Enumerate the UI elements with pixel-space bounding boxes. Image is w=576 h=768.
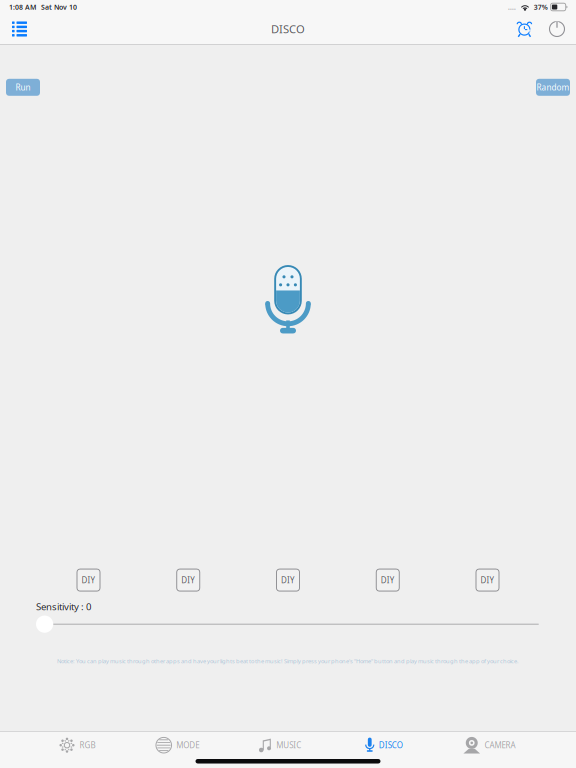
staticText: Run [15,82,30,93]
button[interactable]: DIY [77,569,100,591]
staticText: DIY [281,575,295,585]
staticText: DIY [381,575,395,585]
button[interactable]: DIY [177,569,200,591]
staticText: DIY [81,575,95,585]
staticText: 37% [534,2,548,12]
button[interactable]: DIY [376,569,399,591]
staticText: Random [536,82,569,93]
staticText: DIY [480,575,494,585]
button[interactable]: Menu [0,17,37,41]
staticText: Sat Nov 10 [41,2,77,12]
button[interactable]: CAMERA [436,732,543,759]
staticText: DISCO [379,740,403,751]
button[interactable]: Power [539,19,576,39]
button[interactable]: MODE [127,732,228,759]
button[interactable]: DISCO [332,732,436,759]
staticText: DIY [181,575,195,585]
staticText: RGB [79,740,95,751]
staticText: MUSIC [276,740,301,751]
staticText: Notice: You can play music through other… [57,657,519,665]
button[interactable]: RGB [27,732,127,759]
button[interactable]: DIY [476,569,499,591]
button[interactable]: MUSIC [228,732,332,759]
button[interactable]: DIY [276,569,299,591]
staticText: CAMERA [485,740,516,751]
staticText: Sensitivity : 0 [36,600,91,613]
button[interactable]: Timer [510,18,539,40]
staticText: .... [508,2,516,12]
button[interactable]: Run [6,79,40,96]
staticText: MODE [176,740,199,751]
button[interactable]: Random [536,79,570,96]
staticText: DISCO [271,21,305,37]
staticText: 1:08 AM [9,2,36,12]
